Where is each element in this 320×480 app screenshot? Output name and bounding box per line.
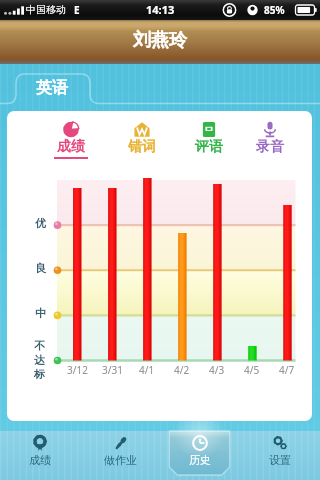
button[interactable]: Settings [240,431,320,480]
other: Settings [272,435,288,451]
staticText: 录音 [256,138,284,156]
staticText: 良 [35,261,46,275]
staticText: E [74,3,80,17]
button[interactable]: History [160,431,240,480]
staticText: 4/3 [209,363,225,377]
staticText: 英语 [36,78,68,98]
staticText: 做作业 [104,453,137,467]
staticText: 14:13 [146,2,175,17]
staticText: 中国移动 [26,3,66,16]
button[interactable]: Grades [0,431,80,480]
button[interactable]: 评语 [185,111,233,161]
staticText: 4/2 [174,363,190,377]
staticText: 错词 [128,138,156,156]
button[interactable]: 成绩 [47,111,95,161]
staticText: 85% [264,3,285,17]
staticText: 不 [34,339,45,353]
staticText: 3/31 [102,363,123,377]
staticText: 标 [34,367,45,381]
staticText: 达 [34,353,45,367]
staticText: 4/1 [139,363,155,377]
other: Grades [32,435,48,451]
staticText: 优 [35,216,46,230]
button[interactable]: Do homework [80,431,160,480]
staticText: 4/5 [244,363,260,377]
other: History [192,435,208,451]
staticText: 评语 [195,138,223,156]
other: Do homework [113,435,129,451]
button[interactable]: 错词 [118,111,166,161]
staticText: 4/7 [279,363,295,377]
staticText: 中 [35,306,46,320]
staticText: 成绩 [29,453,51,467]
staticText: 历史 [189,453,211,467]
staticText: 成绩 [57,138,85,156]
staticText: 3/12 [67,363,88,377]
staticText: 设置 [269,453,291,467]
button[interactable]: 录音 [246,111,294,161]
staticText: 刘燕玲 [133,29,187,52]
